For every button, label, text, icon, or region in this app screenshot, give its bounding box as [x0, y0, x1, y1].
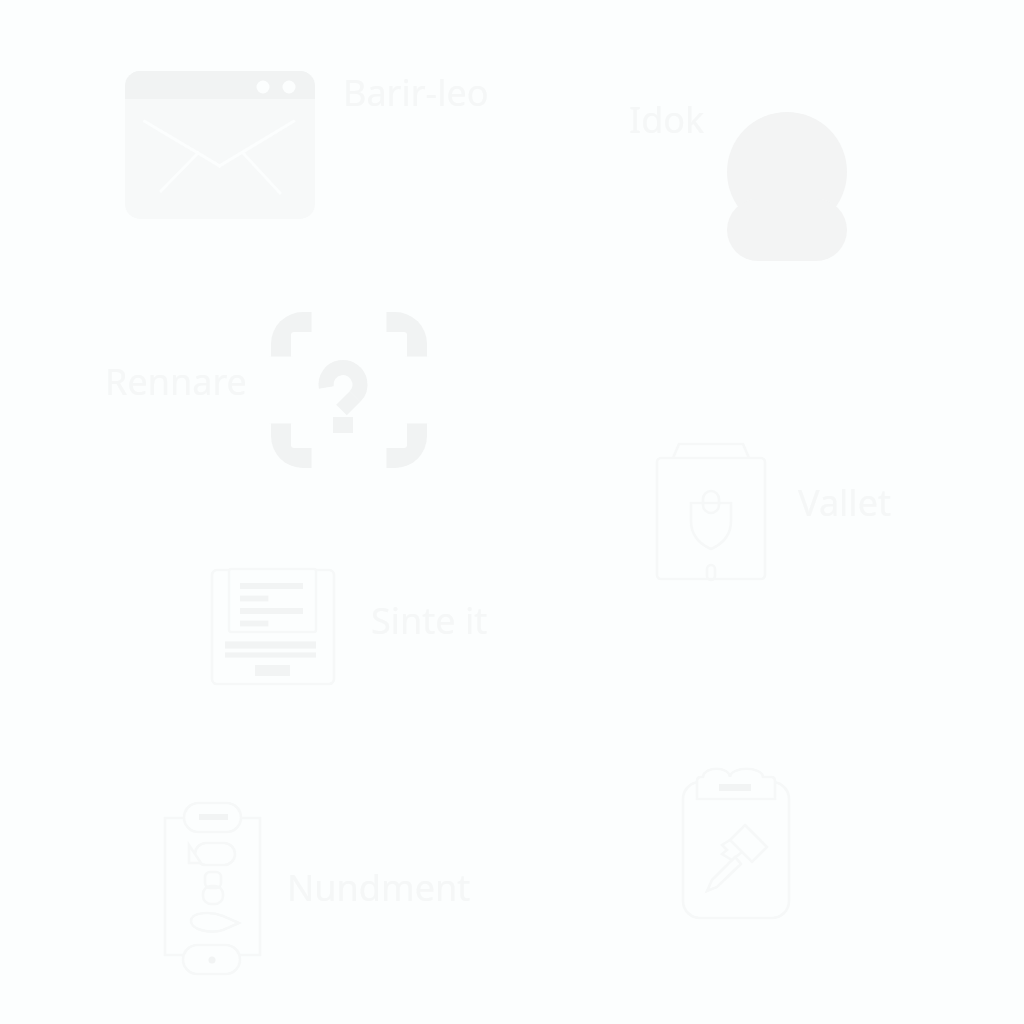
button[interactable]: Help — [271, 312, 427, 468]
button[interactable]: Article — [206, 563, 340, 691]
button[interactable]: Profile — [727, 112, 847, 261]
